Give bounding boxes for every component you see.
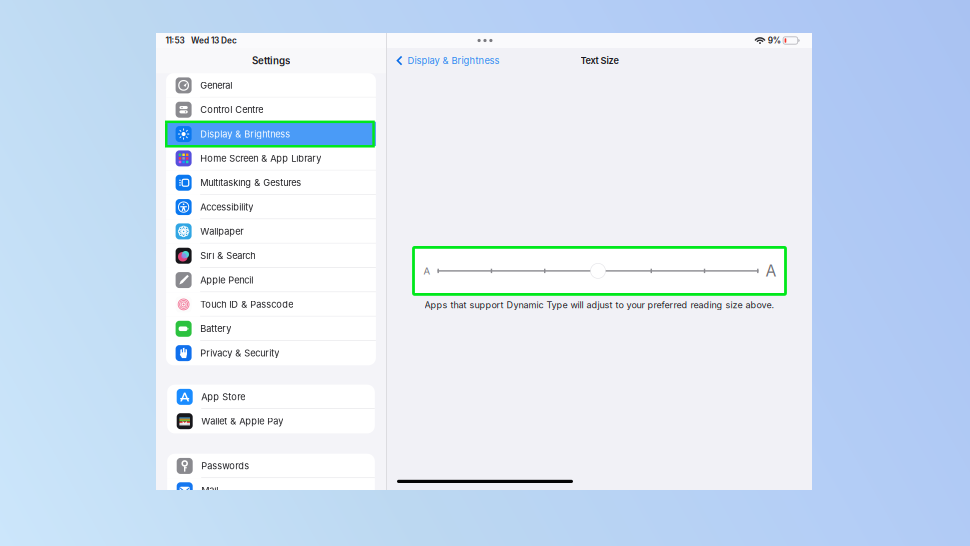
button[interactable]: Mail	[167, 478, 375, 502]
button[interactable]: Passwords	[167, 454, 375, 478]
button[interactable]: Battery	[166, 317, 376, 341]
button[interactable]: General	[166, 73, 376, 97]
staticText: Apple Pencil	[200, 274, 253, 286]
staticText: 9%	[768, 35, 781, 45]
staticText: General	[200, 80, 232, 91]
staticText: A	[765, 261, 776, 280]
staticText: Siri & Search	[200, 250, 255, 261]
staticText: App Store	[201, 391, 245, 402]
button[interactable]: Privacy & Security	[166, 341, 376, 365]
button[interactable]: Control Centre	[166, 97, 376, 122]
button[interactable]: Touch ID & Passcode	[166, 292, 376, 317]
button[interactable]: Multitasking & Gestures	[166, 171, 376, 195]
staticText: Accessibility	[200, 201, 253, 213]
staticText: A	[423, 265, 430, 277]
staticText: Multitasking & Gestures	[200, 177, 301, 188]
button[interactable]: Wallet & Apple Pay	[167, 409, 375, 433]
staticText: 11:53	[165, 35, 184, 45]
staticText: Privacy & Security	[200, 347, 279, 359]
button[interactable]: Home Screen & App Library	[166, 146, 376, 170]
staticText: Text Size	[580, 55, 618, 66]
staticText: Mail	[201, 485, 218, 496]
staticText: Passwords	[201, 460, 249, 471]
button[interactable]: Display & Brightness	[387, 50, 499, 71]
button[interactable]: Wallpaper	[166, 219, 376, 243]
staticText: Home Screen & App Library	[200, 153, 321, 164]
staticText: Display & Brightness	[407, 55, 499, 66]
staticText: Touch ID & Passcode	[200, 299, 293, 310]
staticText: Control Centre	[200, 104, 263, 115]
button[interactable]: Apple Pencil	[166, 268, 376, 292]
staticText: Settings	[252, 55, 290, 66]
button[interactable]: Display & Brightness	[166, 122, 376, 146]
staticText: Wallet & Apple Pay	[201, 416, 283, 427]
button[interactable]: Siri & Search	[166, 244, 376, 268]
staticText: Apps that support Dynamic Type will adju…	[424, 299, 774, 310]
button[interactable]: Accessibility	[166, 195, 376, 219]
staticText: Wallpaper	[200, 226, 243, 237]
button[interactable]: App Store	[167, 385, 375, 409]
staticText: Battery	[200, 323, 231, 334]
staticText: Wed 13 Dec	[191, 35, 237, 45]
staticText: Display & Brightness	[200, 128, 290, 140]
